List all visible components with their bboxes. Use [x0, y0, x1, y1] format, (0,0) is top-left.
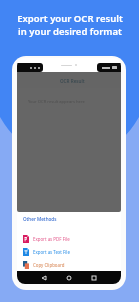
staticText: in your desired format [18, 25, 122, 38]
button[interactable]: Export as PDF File [23, 232, 121, 245]
staticText: Export as Text File [33, 249, 70, 255]
staticText: Export as PDF File [33, 236, 70, 242]
staticText: OCR Result [60, 78, 85, 84]
button[interactable]: Copy Clipboard [23, 258, 121, 271]
staticText: Export your OCR result [17, 12, 123, 25]
staticText: Copy Clipboard [33, 262, 65, 268]
staticText: Other Methods [23, 216, 57, 222]
staticText: Your OCR result appears here [28, 99, 85, 105]
button[interactable]: Back [39, 273, 49, 283]
button[interactable]: Recents [89, 273, 99, 283]
button[interactable]: Export as Text File [23, 245, 121, 258]
button[interactable]: Home [64, 273, 74, 283]
